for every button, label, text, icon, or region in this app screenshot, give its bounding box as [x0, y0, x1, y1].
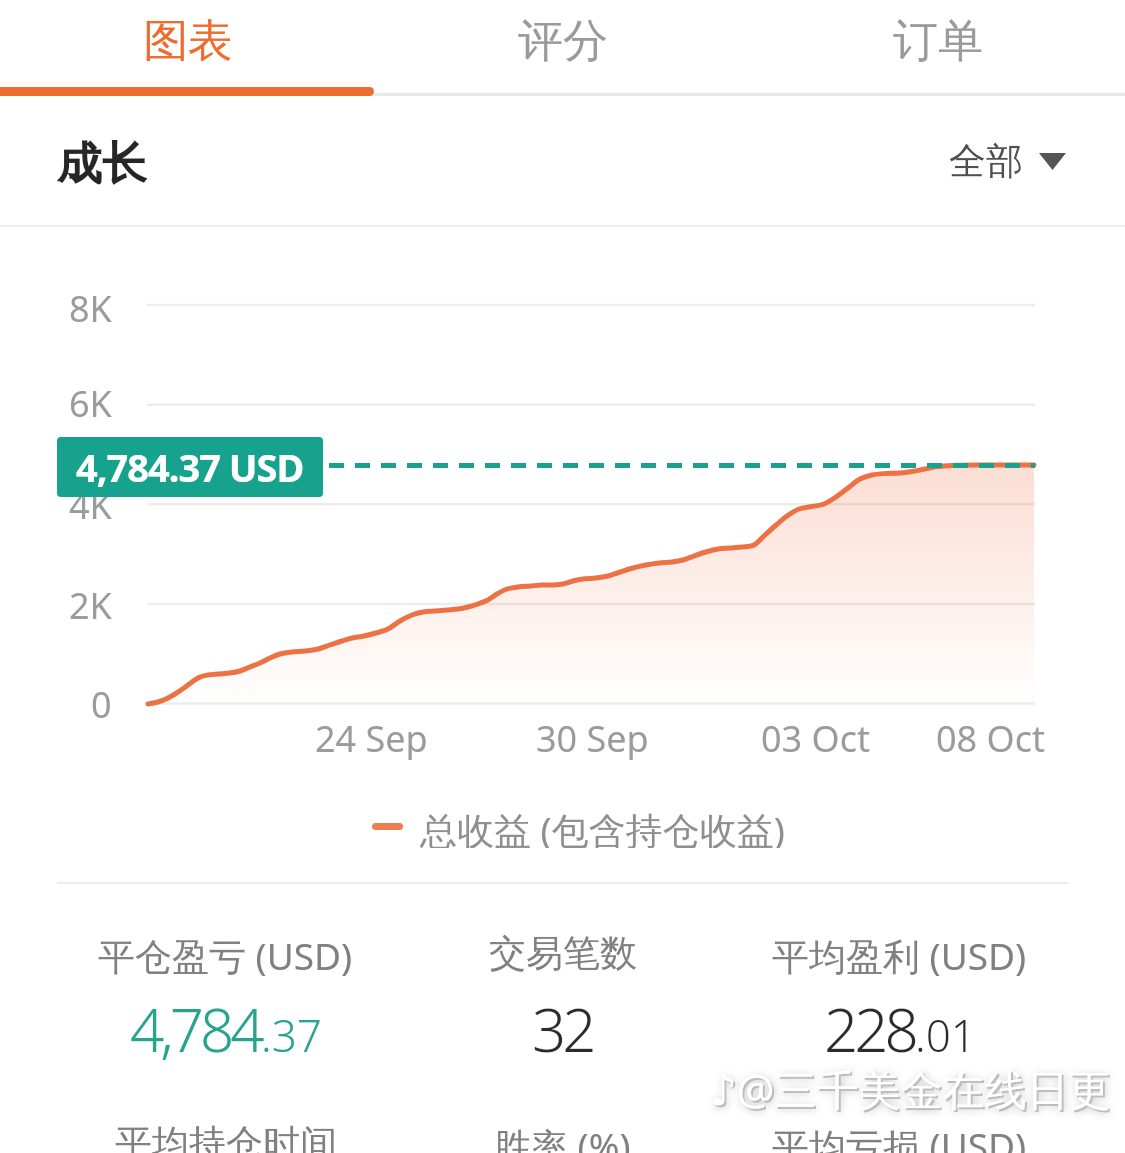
staticText: 08 Oct [936, 714, 1045, 760]
staticText: 总收益 (包含持仓收益) [420, 804, 785, 848]
staticText: 评分 [518, 13, 608, 70]
staticText: 全部 [949, 138, 1023, 185]
staticText: 03 Oct [761, 714, 870, 760]
staticText: 平均持仓时间 [115, 1120, 337, 1153]
staticText: .01 [915, 1005, 976, 1065]
button[interactable]: 图表 [0, 10, 375, 72]
staticText: 成长 [57, 136, 147, 190]
staticText: 6K [69, 379, 112, 425]
staticText: 平均亏损 (USD) [772, 1120, 1027, 1153]
staticText: 228 [824, 988, 915, 1070]
staticText: 4,784 [130, 988, 261, 1070]
staticText: 4K [69, 481, 112, 527]
staticText: 2K [69, 581, 112, 627]
staticText: 8K [69, 284, 112, 330]
staticText: 32 [532, 988, 593, 1070]
button[interactable]: 全部 [930, 132, 1080, 190]
staticText: 平均盈利 (USD) [772, 930, 1027, 981]
staticText: 平仓盈亏 (USD) [98, 930, 353, 981]
staticText: 0 [91, 680, 112, 726]
staticText: 胜率 (%) [494, 1120, 631, 1153]
staticText: ♪@三千美金在线日更 [712, 1062, 1113, 1119]
button[interactable]: 评分 [375, 10, 750, 72]
staticText: 4,784.37 USD [76, 441, 304, 493]
staticText: ♪@三千美金在线日更 [710, 1060, 1111, 1117]
staticText: .37 [261, 1005, 322, 1065]
staticText: 30 Sep [536, 714, 649, 760]
button[interactable]: 订单 [750, 10, 1125, 72]
staticText: 24 Sep [315, 714, 428, 760]
staticText: 交易笔数 [489, 930, 637, 977]
staticText: 订单 [893, 13, 983, 70]
staticText: 图表 [143, 13, 233, 70]
